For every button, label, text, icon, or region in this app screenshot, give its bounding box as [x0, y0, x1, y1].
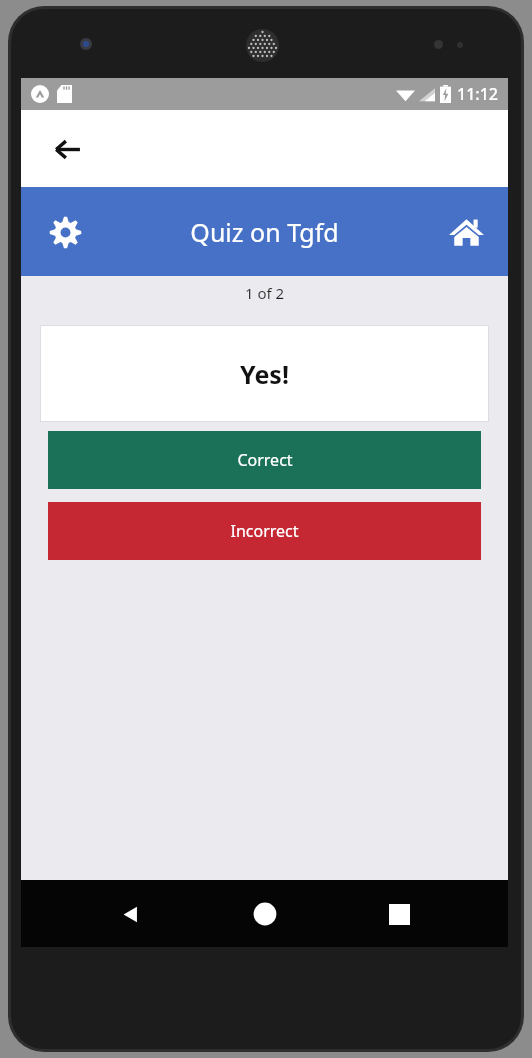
button[interactable]: Home — [241, 890, 289, 938]
button[interactable]: Back — [43, 125, 91, 173]
button[interactable]: Incorrect — [48, 502, 481, 560]
staticText: Incorrect — [230, 520, 299, 542]
button[interactable]: Correct — [48, 431, 481, 489]
button[interactable]: Home — [441, 207, 491, 257]
staticText: Yes! — [240, 357, 289, 391]
staticText: Correct — [237, 449, 293, 471]
button[interactable]: Recent apps — [375, 890, 423, 938]
button[interactable]: Settings — [40, 207, 90, 257]
staticText: 1 of 2 — [21, 283, 508, 303]
staticText: Quiz on Tgfd — [190, 215, 339, 249]
staticText: 11:12 — [457, 83, 498, 105]
button[interactable]: Back — [106, 890, 154, 938]
button[interactable]: Yes! — [41, 326, 488, 421]
